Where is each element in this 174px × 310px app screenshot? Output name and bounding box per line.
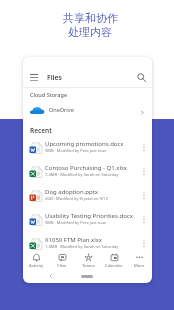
- staticText: Recent: [30, 126, 52, 135]
- staticText: Files: [47, 73, 62, 82]
- staticText: Contoso Purchasing - Q1.xlsx: [45, 164, 128, 172]
- button[interactable]: More options: [139, 166, 149, 176]
- button[interactable]: Dog adoption.pptx: [23, 184, 152, 206]
- staticText: 9MB · Modified by Pete just now: [45, 220, 106, 226]
- button[interactable]: Back: [47, 272, 55, 280]
- staticText: 处理内容: [68, 25, 112, 39]
- button[interactable]: Chat: [49, 253, 75, 269]
- staticText: 9MB · Modified by Pete just now: [45, 148, 106, 154]
- staticText: 共享和协作: [63, 11, 118, 25]
- staticText: 1.4MB · Modified by Sarah on Saturday: [45, 244, 119, 250]
- button[interactable]: Calendar: [101, 253, 127, 269]
- staticText: OneDrive: [49, 106, 74, 114]
- staticText: Upcoming promotions.docx: [45, 140, 124, 148]
- staticText: More: [134, 263, 145, 269]
- button[interactable]: Teams: [75, 253, 101, 269]
- staticText: Teams: [82, 263, 95, 269]
- staticText: Chat: [57, 263, 67, 269]
- staticText: 2GB · Modified by Krystal on 9/12: [45, 196, 108, 202]
- staticText: Cloud Storage: [30, 91, 68, 98]
- button[interactable]: Menu: [28, 71, 40, 83]
- button[interactable]: X1050 FTM Plan.xlsx: [23, 232, 152, 254]
- staticText: Usability Testing Priorities.docx: [45, 212, 133, 220]
- button[interactable]: More options: [139, 142, 149, 152]
- staticText: Activity: [29, 263, 44, 269]
- button[interactable]: More options: [139, 190, 149, 200]
- button[interactable]: Upcoming promotions.docx: [23, 136, 152, 158]
- staticText: Calendar: [105, 263, 123, 269]
- button[interactable]: Activity: [23, 253, 49, 269]
- button[interactable]: Contoso Purchasing - Q1.xlsx: [23, 160, 152, 182]
- staticText: Dog adoption.pptx: [45, 188, 99, 196]
- button[interactable]: Home: [81, 275, 93, 278]
- button[interactable]: More options: [139, 238, 149, 248]
- button[interactable]: More options: [139, 214, 149, 224]
- button[interactable]: Usability Testing Priorities.docx: [23, 208, 152, 230]
- staticText: 7.4MB · Modified by Sarah on Saturday: [45, 172, 119, 178]
- button[interactable]: Search: [135, 71, 147, 83]
- button[interactable]: More: [127, 253, 152, 269]
- staticText: X1050 FTM Plan.xlsx: [45, 236, 102, 244]
- button[interactable]: OneDrive: [23, 103, 152, 117]
